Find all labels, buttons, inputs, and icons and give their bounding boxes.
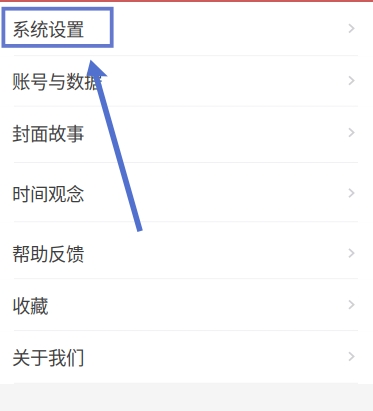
button[interactable]: 封面故事: [0, 107, 373, 163]
button[interactable]: 账号与数据: [0, 56, 373, 107]
staticText: 关于我们: [12, 343, 84, 370]
staticText: 时间观念: [12, 180, 84, 206]
button[interactable]: 帮助反馈: [0, 222, 373, 279]
staticText: 封面故事: [12, 119, 84, 146]
staticText: 系统设置: [12, 15, 84, 42]
button[interactable]: 系统设置: [0, 2, 373, 56]
staticText: 帮助反馈: [12, 240, 84, 266]
staticText: 账号与数据: [12, 67, 102, 94]
button[interactable]: 关于我们: [0, 331, 373, 384]
button[interactable]: 收藏: [0, 279, 373, 331]
staticText: 收藏: [12, 291, 48, 318]
button[interactable]: 时间观念: [0, 163, 373, 222]
